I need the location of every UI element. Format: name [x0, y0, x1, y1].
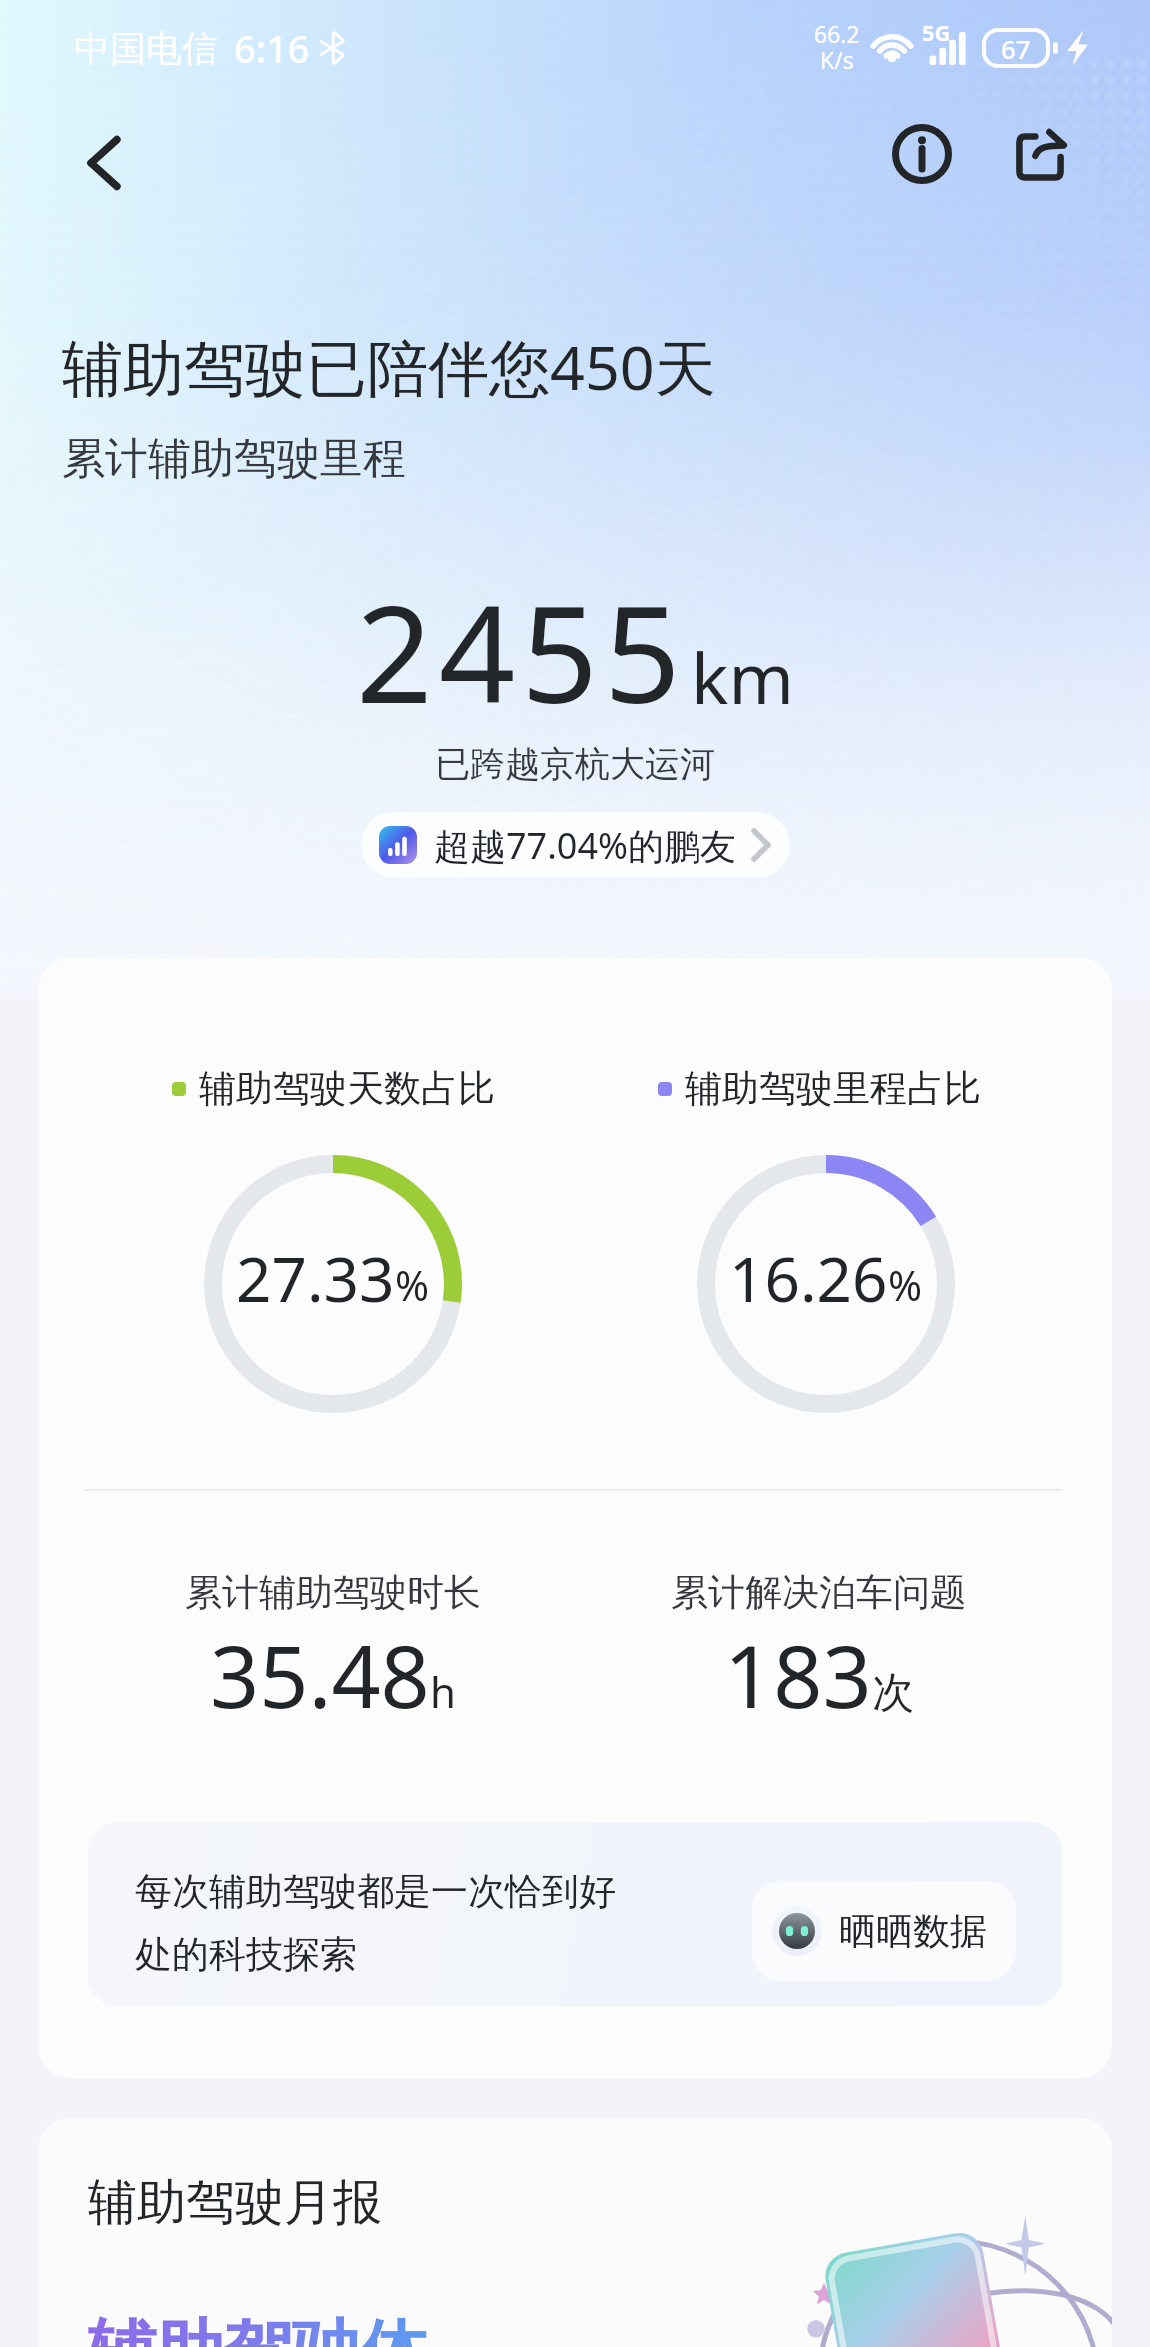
staticText: 5G — [922, 17, 951, 47]
button[interactable]: Share — [982, 98, 1098, 216]
staticText: 67 — [1001, 31, 1031, 66]
staticText: 66.2 — [814, 18, 860, 49]
button[interactable]: 晒晒数据 — [752, 1881, 1016, 1981]
staticText: 辅助驾驶体 — [88, 2310, 428, 2347]
staticText: 次 — [872, 1667, 914, 1720]
staticText: h — [430, 1663, 456, 1720]
staticText: 超越77.04%的鹏友 — [434, 821, 736, 870]
staticText: 27.33 — [236, 1236, 395, 1320]
button[interactable]: Info — [864, 95, 980, 213]
button[interactable]: Back — [58, 104, 150, 222]
staticText: 累计解决泊车问题 — [671, 1569, 967, 1616]
staticText: 183 — [724, 1616, 872, 1733]
staticText: 辅助驾驶已陪伴您450天 — [62, 325, 716, 408]
staticText: 2455 — [356, 560, 687, 743]
staticText: 辅助驾驶天数占比 — [199, 1065, 495, 1112]
button[interactable]: 超越77.04%的鹏友 — [361, 812, 790, 878]
staticText: 晒晒数据 — [839, 1908, 987, 1955]
staticText: % — [888, 1257, 923, 1313]
staticText: km — [691, 629, 794, 724]
staticText: 累计辅助驾驶时长 — [185, 1569, 481, 1616]
staticText: % — [395, 1257, 430, 1313]
staticText: 35.48 — [210, 1616, 430, 1733]
staticText: 6:16 — [234, 22, 310, 74]
staticText: 已跨越京杭大运河 — [435, 742, 715, 786]
staticText: K/s — [820, 44, 854, 73]
staticText: 每次辅助驾驶都是一次恰到好 — [135, 1868, 616, 1915]
staticText: 处的科技探索 — [135, 1931, 357, 1978]
staticText: 中国电信 — [74, 26, 218, 71]
staticText: 辅助驾驶里程占比 — [685, 1065, 981, 1112]
staticText: 累计辅助驾驶里程 — [62, 432, 406, 486]
staticText: 16.26 — [729, 1236, 888, 1320]
staticText: 辅助驾驶月报 — [88, 2172, 382, 2234]
